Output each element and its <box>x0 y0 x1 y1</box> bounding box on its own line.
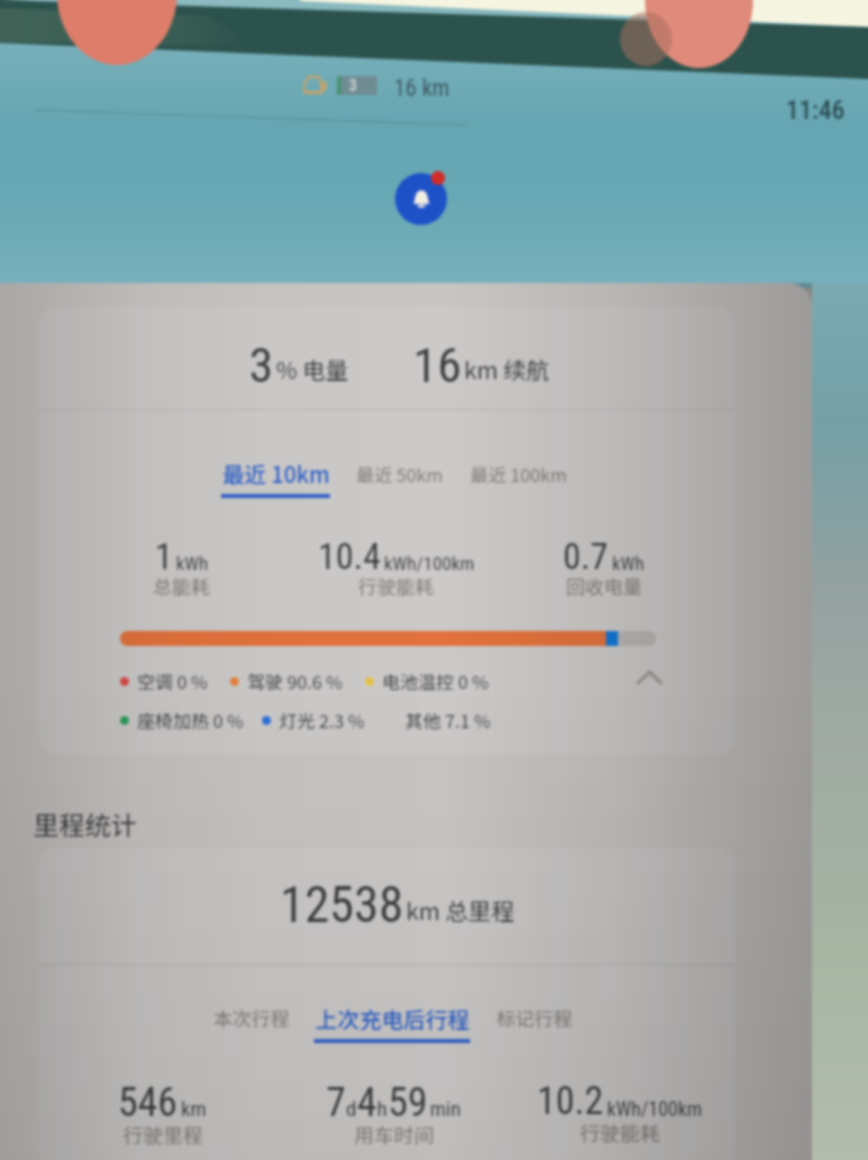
staticText: kWh <box>176 552 209 574</box>
staticText: 最近 10km <box>222 457 330 489</box>
staticText: 用车时间 <box>354 1120 434 1149</box>
staticText: 本次行程 <box>213 1004 289 1032</box>
staticText: kWh <box>612 552 645 574</box>
staticText: kWh/100km <box>607 1097 703 1120</box>
button[interactable]: 最近 100km <box>469 461 568 496</box>
staticText: 空调 0 % <box>137 668 208 694</box>
button[interactable]: Notifications <box>395 173 447 225</box>
button[interactable]: 上次充电后行程 <box>314 1002 470 1043</box>
staticText: 12538 <box>280 876 404 935</box>
staticText: 16 km <box>394 75 450 102</box>
staticText: 标记行程 <box>496 1004 572 1032</box>
staticText: 电池温控 0 % <box>382 668 489 694</box>
staticText: 其他 7.1 % <box>405 707 491 733</box>
staticText: 最近 50km <box>356 461 443 487</box>
button[interactable]: Collapse <box>623 651 675 703</box>
button[interactable]: 标记行程 <box>496 1004 572 1041</box>
staticText: 11:46 <box>786 95 845 125</box>
staticText: min <box>430 1097 461 1122</box>
staticText: 座椅加热 0 % <box>137 707 244 733</box>
staticText: km 续航 <box>464 352 550 385</box>
staticText: 驾驶 90.6 % <box>247 668 343 694</box>
staticText: 3 <box>249 337 274 394</box>
staticText: 10.4 <box>318 536 381 578</box>
staticText: % 电量 <box>276 352 349 385</box>
staticText: 546 <box>118 1079 178 1126</box>
staticText: 7 <box>326 1079 346 1126</box>
staticText: d <box>346 1097 357 1122</box>
staticText: 3 <box>349 76 357 95</box>
staticText: 最近 100km <box>470 461 567 487</box>
staticText: kWh/100km <box>384 552 475 574</box>
staticText: 10.2 <box>537 1079 604 1124</box>
staticText: 4 <box>357 1079 377 1126</box>
staticText: 行驶能耗 <box>358 572 435 600</box>
staticText: 59 <box>388 1079 428 1126</box>
staticText: km 总里程 <box>406 893 515 926</box>
staticText: 灯光 2.3 % <box>279 707 365 733</box>
button[interactable]: 最近 10km <box>221 457 330 498</box>
staticText: 里程统计 <box>33 805 138 843</box>
button[interactable]: 本次行程 <box>213 1004 289 1041</box>
staticText: 16 <box>413 337 462 394</box>
staticText: 总能耗 <box>153 572 211 600</box>
staticText: 上次充电后行程 <box>315 1002 470 1034</box>
staticText: 0.7 <box>563 536 609 578</box>
staticText: 行驶能耗 <box>580 1118 660 1147</box>
staticText: 行驶里程 <box>123 1120 203 1149</box>
staticText: km <box>181 1097 207 1122</box>
staticText: h <box>377 1097 388 1122</box>
staticText: 回收电量 <box>566 572 643 600</box>
button[interactable]: 最近 50km <box>354 461 444 496</box>
staticText: 1 <box>155 536 173 578</box>
